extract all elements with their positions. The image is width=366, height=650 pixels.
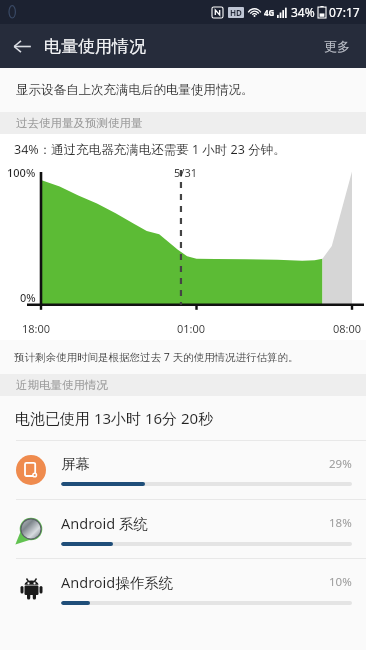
staticText: 18:00: [22, 321, 51, 336]
button[interactable]: Android操作系统: [0, 559, 366, 617]
staticText: 10%: [329, 574, 352, 590]
staticText: 18%: [329, 515, 352, 531]
staticText: 100%: [7, 165, 36, 180]
staticText: 过去使用量及预测使用量: [16, 116, 143, 130]
staticText: 更多: [324, 38, 350, 54]
staticText: 34%：通过充电器充满电还需要 1 小时 23 分钟。: [14, 141, 286, 158]
staticText: 显示设备自上次充满电后的电量使用情况。: [16, 82, 254, 98]
button[interactable]: Android 系统: [0, 500, 366, 558]
staticText: 电量使用情况: [44, 36, 146, 57]
staticText: 08:00: [333, 321, 362, 336]
staticText: HD: [230, 7, 242, 18]
staticText: 4G: [264, 7, 275, 18]
staticText: 5/31: [174, 165, 197, 180]
staticText: 预计剩余使用时间是根据您过去 7 天的使用情况进行估算的。: [14, 350, 299, 364]
button[interactable]: 屏幕: [0, 441, 366, 499]
staticText: 29%: [329, 456, 352, 472]
button[interactable]: 更多: [308, 28, 366, 64]
staticText: 07:17: [329, 4, 360, 20]
staticText: Android 系统: [61, 513, 149, 533]
staticText: 屏幕: [61, 455, 90, 473]
staticText: 34%: [291, 4, 315, 20]
staticText: 电池已使用 13小时 16分 20秒: [15, 408, 214, 428]
staticText: 0%: [20, 290, 36, 305]
button[interactable]: 返回: [0, 24, 44, 68]
staticText: Android操作系统: [61, 572, 174, 592]
staticText: 01:00: [177, 321, 206, 336]
staticText: 近期电量使用情况: [16, 378, 108, 392]
